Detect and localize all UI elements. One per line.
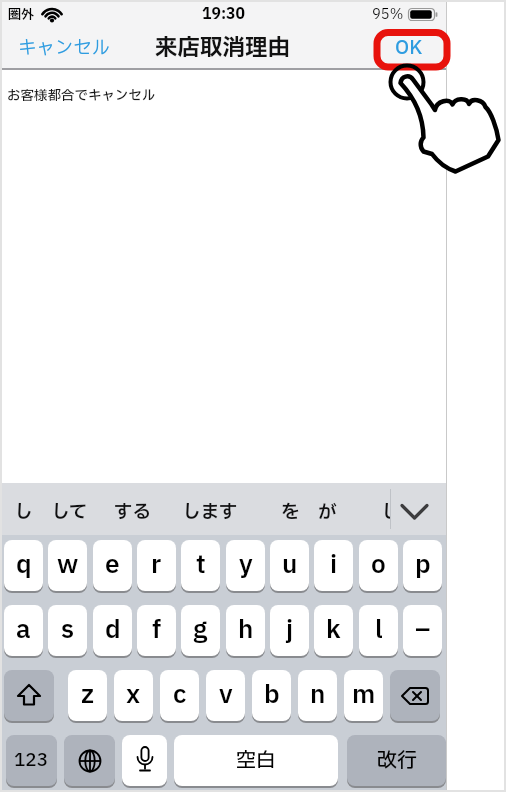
button[interactable]: し — [14, 498, 33, 526]
button[interactable]: f — [137, 605, 176, 656]
button[interactable]: z — [68, 670, 107, 721]
staticText: m — [352, 677, 376, 714]
staticText: h — [238, 612, 254, 649]
button[interactable]: e — [93, 540, 132, 591]
button[interactable] — [390, 670, 440, 721]
button[interactable] — [122, 735, 167, 786]
button[interactable]: i — [314, 540, 353, 591]
staticText: x — [126, 677, 141, 714]
staticText: します — [182, 498, 238, 526]
staticText: n — [310, 677, 326, 714]
button[interactable]: 123 — [6, 735, 57, 786]
button[interactable]: q — [4, 540, 43, 591]
button[interactable]: a — [4, 605, 43, 656]
button[interactable]: を — [281, 498, 300, 526]
staticText: f — [152, 612, 162, 649]
staticText: t — [196, 547, 206, 584]
staticText: が — [318, 498, 337, 526]
staticText: 空白 — [236, 746, 276, 776]
staticText: e — [105, 547, 120, 584]
button[interactable]: s — [48, 605, 87, 656]
button[interactable]: 空白 — [174, 735, 338, 786]
button[interactable]: キャンセル — [18, 34, 111, 62]
button[interactable]: y — [226, 540, 265, 591]
button[interactable]: o — [359, 540, 398, 591]
staticText: する — [114, 498, 151, 526]
staticText: OK — [395, 34, 423, 62]
staticText: 来店取消理由 — [155, 31, 291, 65]
staticText: i — [330, 547, 338, 584]
button[interactable]: l — [359, 605, 398, 656]
button[interactable]: c — [160, 670, 199, 721]
staticText: a — [16, 612, 31, 649]
button[interactable]: n — [298, 670, 337, 721]
button[interactable]: が — [318, 498, 337, 526]
staticText: w — [57, 547, 79, 584]
staticText: し — [381, 498, 390, 526]
staticText: 圏外 — [8, 5, 35, 24]
button[interactable]: p — [403, 540, 442, 591]
button[interactable] — [64, 735, 115, 786]
staticText: して — [51, 498, 87, 526]
button[interactable] — [398, 499, 430, 531]
button[interactable]: d — [93, 605, 132, 656]
button[interactable]: r — [137, 540, 176, 591]
staticText: u — [282, 547, 298, 584]
staticText: g — [193, 612, 208, 649]
staticText: 改行 — [377, 746, 417, 776]
staticText: q — [16, 547, 32, 584]
staticText: j — [286, 612, 294, 649]
staticText: y — [239, 547, 253, 584]
button[interactable]: h — [226, 605, 265, 656]
button[interactable]: u — [270, 540, 309, 591]
button[interactable]: j — [270, 605, 309, 656]
button[interactable]: する — [114, 498, 151, 526]
staticText: p — [415, 547, 431, 584]
button[interactable]: x — [114, 670, 153, 721]
button[interactable]: – — [403, 605, 442, 656]
staticText: し — [14, 498, 33, 526]
button[interactable]: v — [206, 670, 245, 721]
staticText: 19:30 — [202, 3, 245, 25]
button[interactable]: OK — [395, 34, 423, 62]
button[interactable] — [4, 670, 54, 721]
button[interactable]: w — [48, 540, 87, 591]
button[interactable]: b — [252, 670, 291, 721]
staticText: v — [219, 677, 233, 714]
staticText: – — [415, 612, 431, 649]
button[interactable]: k — [314, 605, 353, 656]
button[interactable]: g — [181, 605, 220, 656]
staticText: z — [81, 677, 95, 714]
staticText: キャンセル — [18, 34, 111, 62]
staticText: o — [371, 547, 386, 584]
staticText: お客様都合でキャンセル — [7, 86, 156, 106]
staticText: 95% — [372, 4, 404, 25]
button[interactable]: 改行 — [347, 735, 446, 786]
staticText: c — [173, 677, 187, 714]
staticText: d — [105, 612, 121, 649]
staticText: を — [281, 498, 300, 526]
button[interactable]: して — [51, 498, 87, 526]
staticText: r — [151, 547, 162, 584]
staticText: l — [375, 612, 383, 649]
staticText: k — [326, 612, 341, 649]
staticText: s — [61, 612, 75, 649]
button[interactable]: します — [182, 498, 238, 526]
button[interactable]: m — [344, 670, 383, 721]
staticText: b — [264, 677, 280, 714]
staticText: 123 — [14, 747, 49, 774]
button[interactable]: t — [181, 540, 220, 591]
